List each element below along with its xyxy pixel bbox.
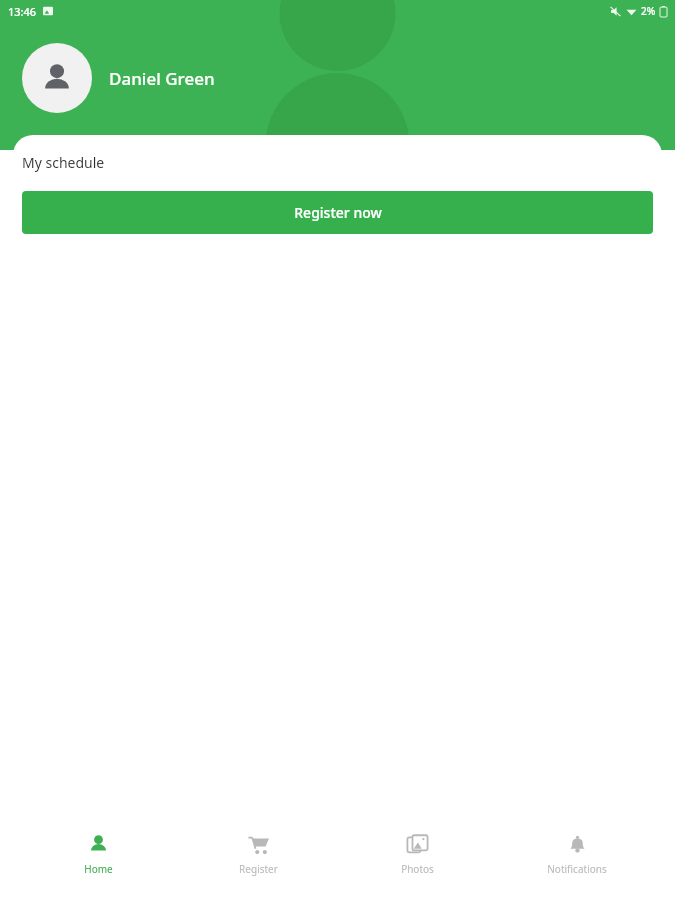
button[interactable]: Notifications — [502, 834, 652, 876]
button[interactable]: Home — [23, 834, 173, 876]
staticText: Home — [84, 862, 113, 876]
button[interactable]: Profile photo — [22, 43, 92, 113]
staticText: 13:46 — [8, 4, 37, 19]
button[interactable]: Photos — [342, 834, 492, 876]
staticText: Notifications — [547, 862, 607, 876]
staticText: 2% — [641, 4, 656, 18]
staticText: Photos — [401, 862, 434, 876]
button[interactable]: Register — [183, 834, 333, 876]
staticText: My schedule — [22, 153, 105, 172]
staticText: Register now — [294, 203, 382, 222]
button[interactable]: Register now — [22, 191, 653, 234]
staticText: Register — [239, 862, 278, 876]
staticText: Daniel Green — [109, 67, 215, 90]
